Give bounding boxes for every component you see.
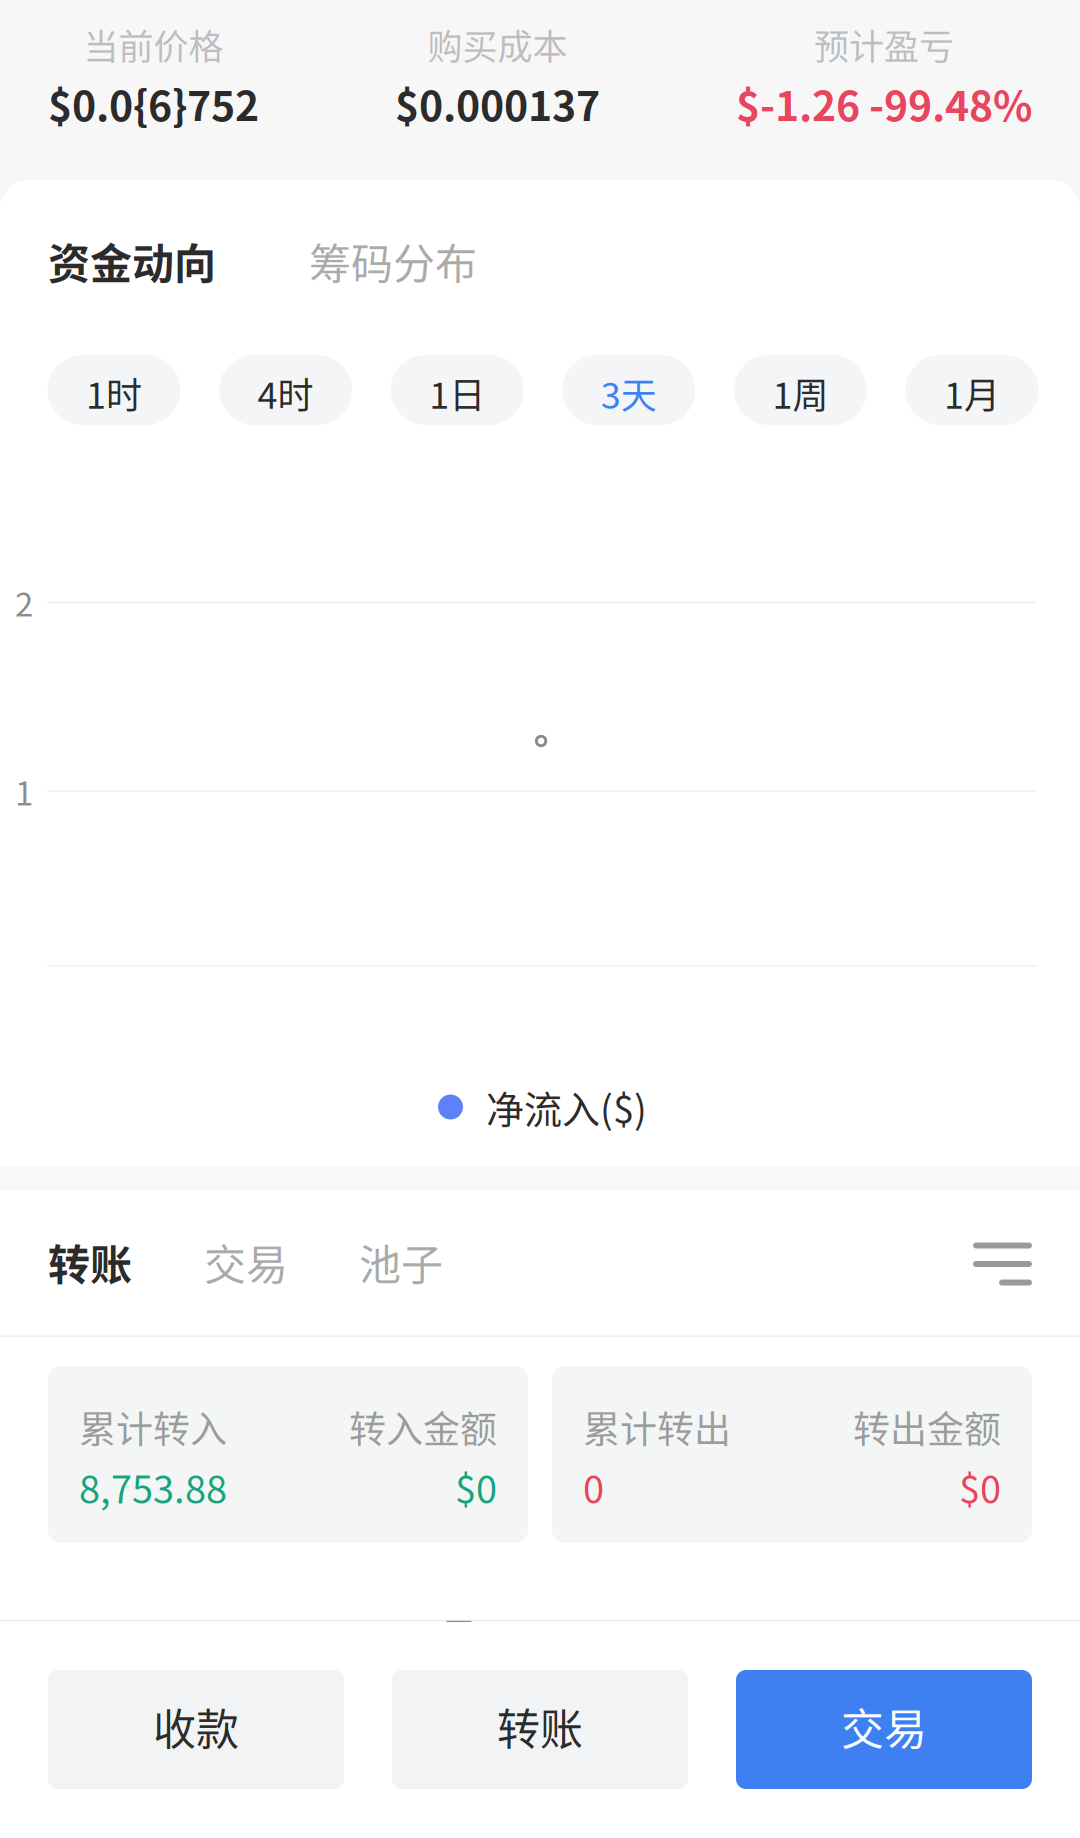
button[interactable]: 1月: [905, 355, 1038, 425]
staticText: 1: [15, 767, 33, 815]
staticText: $-1.26 -99.48%: [736, 73, 1032, 133]
staticText: 累计转出: [583, 1400, 731, 1454]
staticText: 交易: [204, 1232, 288, 1292]
staticText: 3天: [601, 367, 657, 419]
staticText: 1日: [429, 367, 485, 419]
button[interactable]: 交易: [736, 1670, 1032, 1789]
staticText: $0.0{6}752: [48, 73, 259, 133]
button[interactable]: 池子: [359, 1232, 443, 1292]
staticText: 净流入($): [486, 1079, 647, 1134]
staticText: $0: [959, 1459, 1001, 1514]
button[interactable]: 3天: [562, 355, 695, 425]
staticText: 累计转入: [79, 1400, 227, 1454]
staticText: 资金动向: [48, 231, 216, 291]
button[interactable]: 1日: [391, 355, 524, 425]
staticText: 转入金额: [349, 1400, 497, 1454]
staticText: 0: [583, 1459, 604, 1514]
staticText: 当前价格: [83, 19, 223, 70]
staticText: 预计盈亏: [814, 19, 954, 70]
staticText: 8,753.88: [79, 1459, 227, 1514]
staticText: 转账: [497, 1695, 583, 1758]
staticText: 4时: [258, 367, 314, 419]
staticText: 1周: [772, 367, 828, 419]
staticText: 2: [15, 578, 33, 626]
staticText: $0.000137: [395, 73, 600, 133]
staticText: 1时: [86, 367, 142, 419]
button[interactable]: 1时: [47, 355, 180, 425]
button[interactable]: 转账: [392, 1670, 688, 1789]
staticText: 1月: [944, 367, 1000, 419]
staticText: $0: [455, 1459, 497, 1514]
staticText: 收款: [153, 1695, 239, 1758]
button[interactable]: 收款: [48, 1670, 344, 1789]
staticText: 筹码分布: [309, 231, 477, 291]
staticText: 转出金额: [853, 1400, 1001, 1454]
button[interactable]: 1周: [734, 355, 867, 425]
staticText: 转账: [48, 1232, 132, 1292]
staticText: 池子: [359, 1232, 443, 1292]
staticText: 购买成本: [427, 19, 567, 70]
button[interactable]: 筹码分布: [309, 231, 477, 291]
button[interactable]: 排序: [962, 1229, 1042, 1299]
button[interactable]: 资金动向: [48, 231, 216, 291]
button[interactable]: 转账: [48, 1232, 132, 1292]
staticText: 交易: [841, 1695, 927, 1758]
button[interactable]: 4时: [219, 355, 352, 425]
button[interactable]: 交易: [204, 1232, 288, 1292]
